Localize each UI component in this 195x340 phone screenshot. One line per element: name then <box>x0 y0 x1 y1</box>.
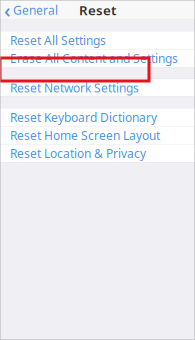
staticText: Reset Network Settings <box>10 80 139 96</box>
staticText: Reset Location & Privacy <box>10 145 146 161</box>
button[interactable]: Reset Network Settings <box>0 78 195 96</box>
staticText: General <box>13 2 58 18</box>
button[interactable]: ‹ <box>0 0 58 26</box>
staticText: Reset All Settings <box>10 32 106 48</box>
button[interactable]: Reset Home Screen Layout <box>0 126 195 144</box>
button[interactable]: Reset Keyboard Dictionary <box>0 108 195 126</box>
button[interactable]: Erase All Content and Settings <box>0 49 195 67</box>
staticText: Reset Keyboard Dictionary <box>10 109 157 125</box>
staticText: Erase All Content and Settings <box>10 50 178 66</box>
staticText: Reset <box>79 1 116 19</box>
staticText: ‹ <box>4 0 11 23</box>
button[interactable]: Reset Location & Privacy <box>0 144 195 162</box>
button[interactable]: Reset All Settings <box>0 31 195 49</box>
staticText: Reset Home Screen Layout <box>10 127 160 143</box>
